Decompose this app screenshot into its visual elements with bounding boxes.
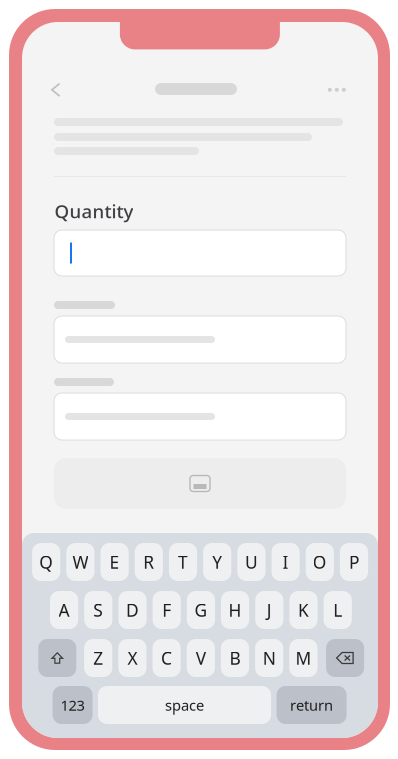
button[interactable]: L	[324, 591, 352, 629]
staticText: Y	[212, 550, 222, 573]
staticText: return	[290, 695, 333, 715]
button[interactable]: Back	[39, 72, 73, 106]
staticText: F	[162, 598, 171, 621]
staticText: H	[229, 598, 242, 621]
button[interactable]: C	[152, 639, 181, 677]
button[interactable]: More options	[320, 73, 354, 107]
button[interactable]: J	[255, 591, 283, 629]
button[interactable]: W	[66, 543, 94, 581]
staticText: S	[93, 598, 103, 621]
button[interactable]: K	[289, 591, 318, 629]
button[interactable]: space	[98, 686, 271, 724]
button[interactable]: O	[306, 543, 334, 581]
staticText: C	[161, 646, 172, 669]
staticText: A	[59, 598, 70, 621]
staticText: G	[194, 598, 207, 621]
staticText: space	[165, 695, 204, 715]
staticText: P	[349, 550, 359, 573]
staticText: O	[313, 550, 327, 573]
staticText: R	[143, 550, 154, 573]
button[interactable]: E	[100, 543, 129, 581]
button[interactable]: Z	[84, 639, 112, 677]
staticText: V	[196, 646, 206, 669]
button[interactable]: P	[340, 543, 368, 581]
button[interactable]: I	[271, 543, 300, 581]
button[interactable]: R	[135, 543, 163, 581]
staticText: Z	[93, 646, 103, 669]
staticText: L	[333, 598, 342, 621]
button[interactable]: F	[153, 591, 181, 629]
button[interactable]: A	[50, 591, 78, 629]
staticText: I	[283, 550, 289, 573]
button[interactable]: V	[187, 639, 215, 677]
staticText: W	[72, 550, 88, 573]
button[interactable]: D	[118, 591, 147, 629]
staticText: U	[245, 550, 258, 573]
staticText: J	[267, 598, 272, 621]
button[interactable]: M	[289, 639, 317, 677]
button[interactable]: Y	[203, 543, 231, 581]
button[interactable]: H	[221, 591, 249, 629]
staticText: X	[127, 646, 137, 669]
button[interactable]: N	[255, 639, 283, 677]
staticText: K	[298, 598, 309, 621]
button[interactable]: T	[169, 543, 197, 581]
staticText: 123	[61, 695, 85, 715]
button[interactable]: 123	[53, 686, 93, 724]
staticText: B	[229, 646, 240, 669]
button[interactable]: B	[221, 639, 249, 677]
staticText: M	[295, 646, 311, 669]
staticText: D	[126, 598, 139, 621]
button[interactable]: U	[237, 543, 265, 581]
button[interactable]: G	[187, 591, 215, 629]
button[interactable]: S	[84, 591, 112, 629]
button[interactable]: X	[118, 639, 146, 677]
button[interactable]: Submit	[54, 458, 346, 509]
staticText: Quantity	[54, 199, 133, 223]
button[interactable]: Q	[32, 543, 60, 581]
staticText: N	[263, 646, 276, 669]
button[interactable]	[326, 639, 364, 677]
staticText: Q	[39, 550, 53, 573]
staticText: E	[110, 550, 120, 573]
staticText: T	[178, 550, 188, 573]
button[interactable]: return	[277, 686, 347, 724]
button[interactable]	[38, 639, 76, 677]
